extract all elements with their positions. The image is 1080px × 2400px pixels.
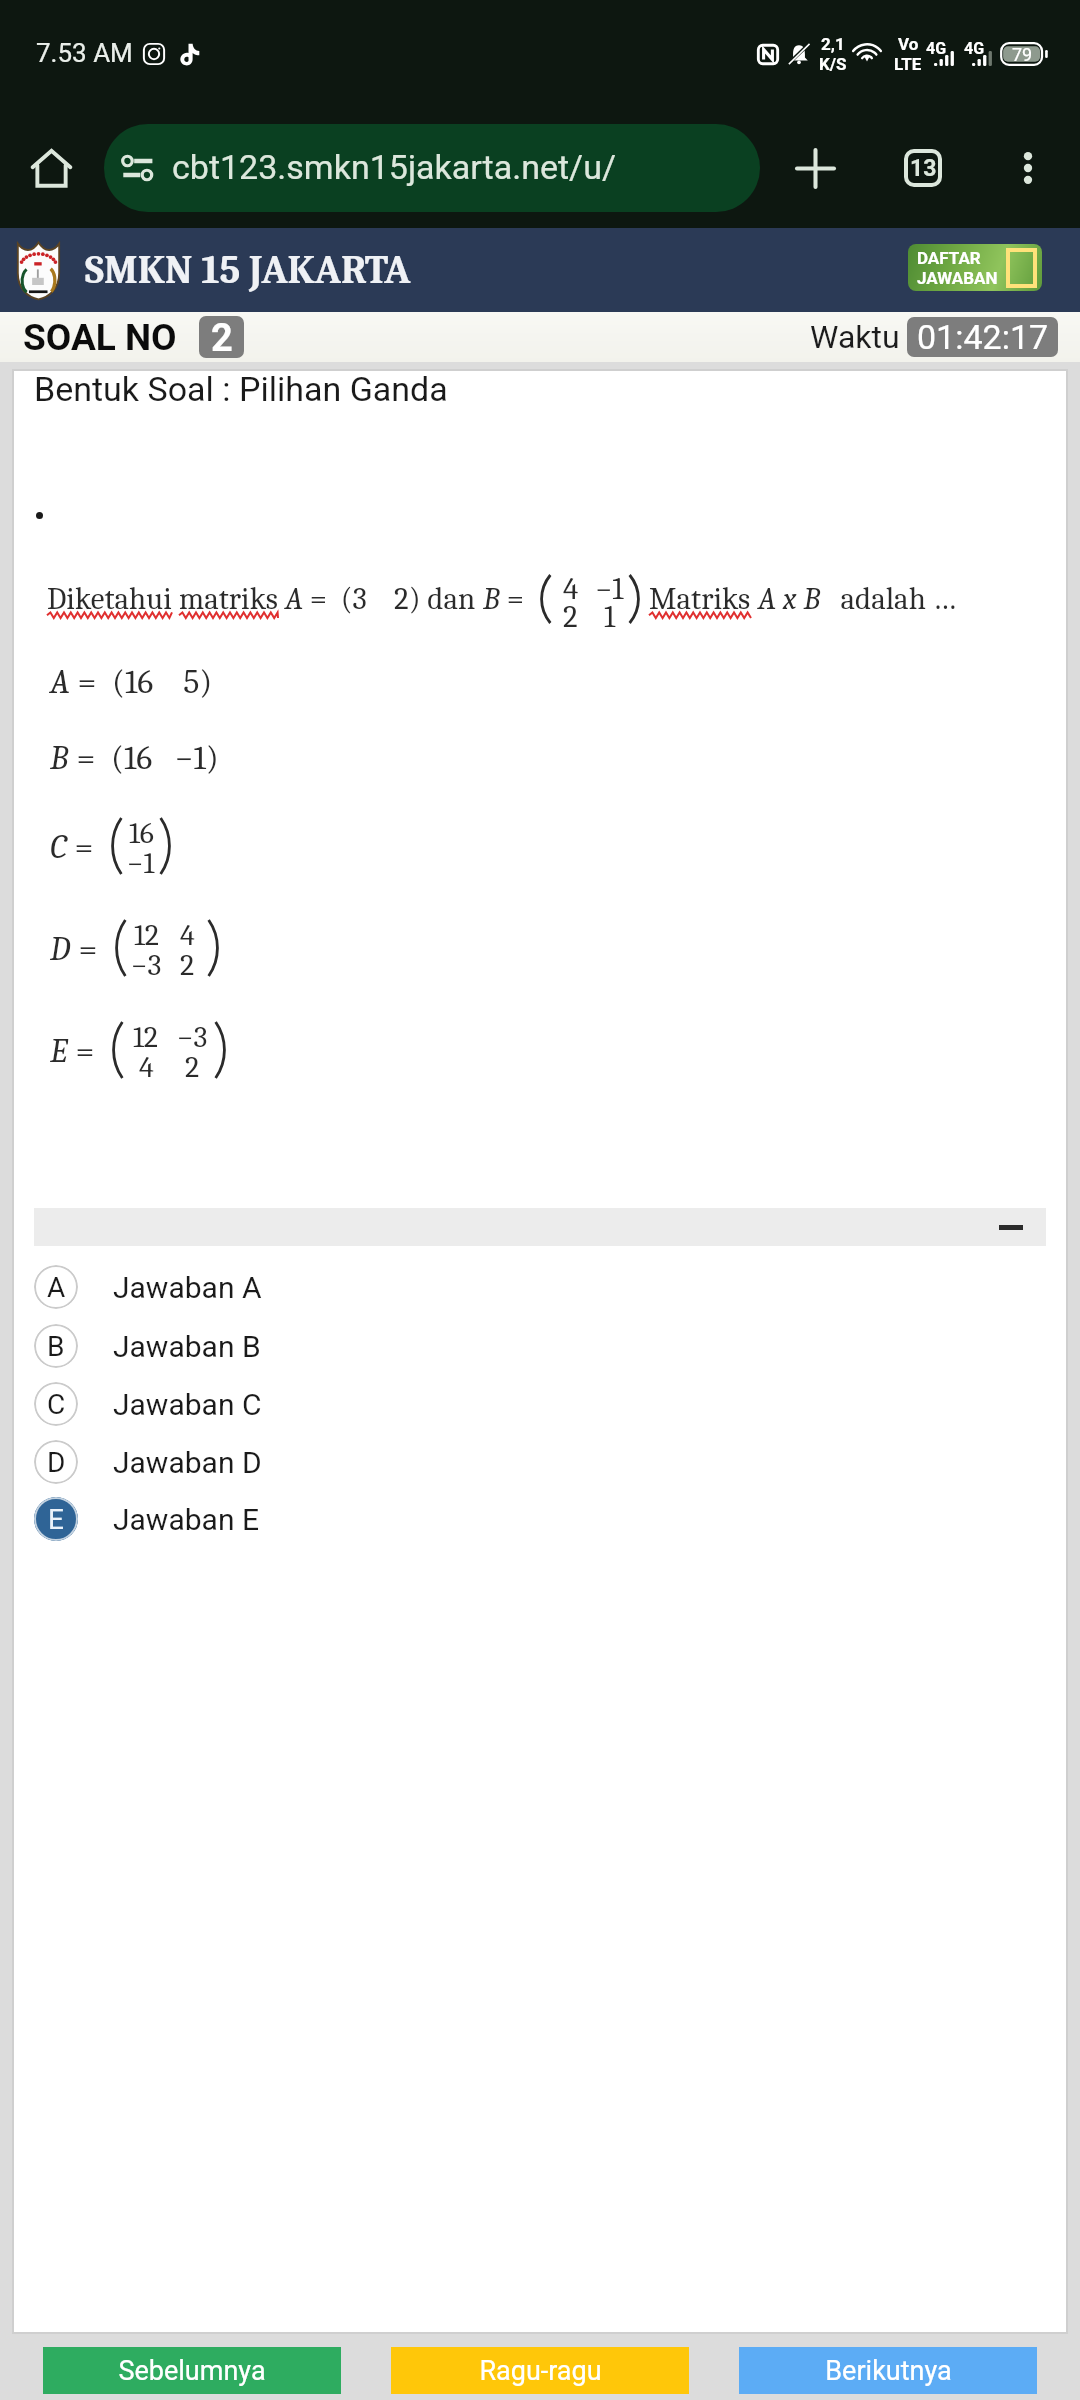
staticText: −1 bbox=[127, 846, 155, 876]
staticText: Jawaban D bbox=[113, 1445, 262, 1480]
button[interactable]: Sebelumnya bbox=[43, 2347, 341, 2394]
staticText: Berikutnya bbox=[825, 2355, 952, 2387]
staticText bbox=[642, 581, 649, 617]
staticText: B bbox=[50, 738, 69, 777]
staticText: B bbox=[47, 1330, 65, 1363]
button[interactable]: DAFTAR bbox=[908, 244, 1042, 291]
staticText: Waktu bbox=[810, 318, 900, 356]
staticText: E bbox=[50, 1031, 68, 1070]
staticText: Jawaban E bbox=[113, 1502, 259, 1537]
staticText: K/S bbox=[819, 54, 847, 74]
staticText: matriks bbox=[179, 581, 278, 617]
staticText: Ragu-ragu bbox=[479, 2355, 602, 2387]
staticText: 13 bbox=[910, 155, 937, 182]
button[interactable]: C bbox=[14, 1375, 1064, 1433]
staticText: A bbox=[50, 662, 70, 701]
staticText: 4 bbox=[180, 918, 195, 948]
button[interactable]: Ragu-ragu bbox=[391, 2347, 689, 2394]
button[interactable]: Collapse bbox=[34, 1208, 1046, 1246]
button[interactable]: Berikutnya bbox=[739, 2347, 1037, 2394]
staticText: SOAL NO bbox=[23, 316, 177, 359]
staticText: LTE bbox=[894, 54, 922, 74]
staticText: 1 bbox=[604, 599, 616, 627]
staticText: 01:42:17 bbox=[917, 317, 1049, 357]
button[interactable]: E bbox=[14, 1490, 1064, 1548]
staticText: 2 bbox=[211, 316, 233, 358]
staticText: 12 bbox=[134, 918, 160, 948]
staticText: = bbox=[69, 738, 111, 777]
staticText: = bbox=[67, 827, 109, 866]
staticText: −1 bbox=[595, 571, 624, 599]
staticText: A bbox=[285, 581, 303, 617]
staticText: (16 −1) bbox=[111, 738, 219, 777]
staticText: cbt123.smkn15jakarta.net/u/ bbox=[172, 147, 616, 187]
staticText: 2 bbox=[180, 948, 195, 978]
staticText: SMKN 15 JAKARTA bbox=[85, 247, 411, 293]
staticText: JAWABAN bbox=[917, 268, 998, 288]
staticText: 12 bbox=[133, 1020, 159, 1050]
staticText: Jawaban C bbox=[113, 1387, 262, 1422]
staticText: = bbox=[68, 1031, 110, 1070]
staticText: = bbox=[500, 581, 538, 617]
staticText: adalah … bbox=[820, 581, 956, 617]
staticText: D bbox=[47, 1446, 66, 1479]
staticText: −3 bbox=[131, 948, 162, 978]
staticText: C bbox=[50, 827, 67, 866]
staticText bbox=[172, 581, 179, 617]
button[interactable]: Tabs bbox=[879, 124, 967, 212]
button[interactable]: New tab bbox=[771, 124, 859, 212]
button[interactable]: More options bbox=[991, 131, 1065, 205]
staticText: = bbox=[70, 662, 112, 701]
button[interactable]: A bbox=[14, 1258, 1064, 1316]
staticText: 79 bbox=[1012, 44, 1033, 65]
staticText: 4G bbox=[926, 39, 947, 58]
staticText: A bbox=[47, 1271, 66, 1304]
staticText: Matriks bbox=[649, 581, 751, 617]
staticText: 2,1 bbox=[821, 34, 845, 54]
staticText: = (3 2) dan bbox=[303, 581, 483, 617]
staticText bbox=[751, 581, 758, 617]
staticText: E bbox=[48, 1503, 64, 1536]
staticText: B bbox=[483, 581, 500, 617]
button[interactable]: Home bbox=[18, 135, 84, 201]
staticText: Jawaban B bbox=[113, 1329, 261, 1364]
staticText bbox=[278, 581, 285, 617]
staticText: 4 bbox=[139, 1050, 154, 1080]
staticText: (16 5) bbox=[112, 662, 213, 701]
button[interactable]: cbt123.smkn15jakarta.net/u/ bbox=[104, 124, 760, 212]
staticText: Jawaban A bbox=[113, 1270, 262, 1305]
staticText: A x B bbox=[758, 581, 820, 617]
staticText: Vo bbox=[898, 34, 919, 54]
staticText: Sebelumnya bbox=[118, 2355, 266, 2387]
staticText: −3 bbox=[177, 1020, 208, 1050]
button[interactable]: B bbox=[14, 1317, 1064, 1375]
staticText: 4G bbox=[964, 39, 985, 58]
staticText: C bbox=[47, 1388, 66, 1421]
staticText: 4 bbox=[563, 571, 579, 599]
staticText: Bentuk Soal : Pilihan Ganda bbox=[34, 369, 448, 409]
staticText: = bbox=[71, 929, 113, 968]
staticText: Diketahui bbox=[47, 581, 172, 617]
staticText: D bbox=[50, 929, 71, 968]
staticText: 7.53 AM bbox=[36, 38, 133, 68]
staticText: 2 bbox=[185, 1050, 200, 1080]
staticText: 16 bbox=[129, 816, 154, 846]
button[interactable]: D bbox=[14, 1433, 1064, 1491]
staticText: DAFTAR bbox=[917, 248, 981, 268]
staticText: 2 bbox=[563, 599, 578, 627]
